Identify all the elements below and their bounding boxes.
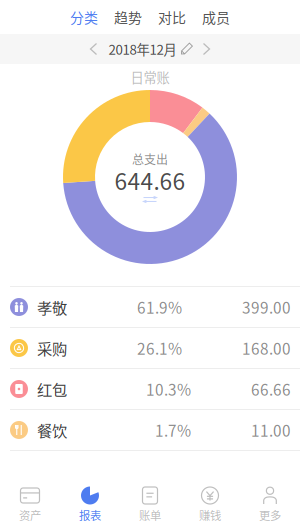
- button[interactable]: 成员: [202, 0, 230, 34]
- staticText: 红包: [37, 378, 67, 400]
- staticText: 成员: [202, 7, 230, 27]
- button[interactable]: 赚钱: [180, 451, 240, 522]
- staticText: 10.3%: [146, 378, 191, 400]
- staticText: 趋势: [114, 7, 142, 27]
- staticText: 168.00: [242, 337, 291, 359]
- staticText: 日常账: [130, 67, 169, 87]
- button[interactable]: Next month: [195, 43, 217, 54]
- staticText: 孝敬: [37, 296, 67, 318]
- button[interactable]: 资产: [0, 451, 60, 522]
- staticText: 餐饮: [37, 419, 67, 441]
- staticText: 26.1%: [137, 337, 182, 359]
- button[interactable]: 红包: [0, 369, 300, 410]
- button[interactable]: 报表: [60, 451, 120, 522]
- button[interactable]: 2018年12月: [104, 39, 195, 59]
- staticText: 61.9%: [137, 296, 182, 318]
- button[interactable]: 账单: [120, 451, 180, 522]
- staticText: 赚钱: [199, 507, 221, 522]
- staticText: 对比: [158, 7, 186, 27]
- button[interactable]: 对比: [158, 0, 186, 34]
- button[interactable]: 餐饮: [0, 410, 300, 451]
- staticText: 分类: [70, 7, 98, 27]
- button[interactable]: 分类: [70, 0, 98, 34]
- staticText: 644.66: [114, 164, 185, 196]
- staticText: 66.66: [251, 378, 291, 400]
- staticText: 399.00: [242, 296, 291, 318]
- staticText: 更多: [259, 507, 281, 522]
- staticText: 2018年12月: [108, 39, 176, 59]
- staticText: 1.7%: [155, 419, 191, 441]
- staticText: 报表: [79, 507, 101, 522]
- staticText: 账单: [139, 507, 161, 522]
- staticText: 资产: [19, 507, 41, 522]
- button[interactable]: 孝敬: [0, 287, 300, 328]
- button[interactable]: 趋势: [114, 0, 142, 34]
- button[interactable]: 采购: [0, 328, 300, 369]
- staticText: 总支出: [132, 150, 168, 168]
- button[interactable]: 更多: [240, 451, 300, 522]
- staticText: 11.00: [251, 419, 291, 441]
- staticText: 采购: [37, 337, 67, 359]
- button[interactable]: Previous month: [82, 43, 104, 54]
